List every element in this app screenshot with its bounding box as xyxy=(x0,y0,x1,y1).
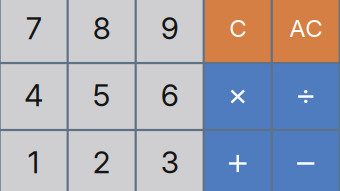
button[interactable]: Subtract xyxy=(272,130,340,191)
button[interactable]: One xyxy=(0,130,68,191)
button[interactable]: Three xyxy=(136,130,204,191)
button[interactable]: Eight xyxy=(68,0,136,63)
button[interactable]: Five xyxy=(68,63,136,130)
button[interactable]: Four xyxy=(0,63,68,130)
button[interactable]: Nine xyxy=(136,0,204,63)
staticText: 5 xyxy=(93,77,111,113)
staticText: 3 xyxy=(161,144,179,180)
staticText: 9 xyxy=(161,10,179,46)
staticText: C xyxy=(229,14,246,43)
staticText: 1 xyxy=(28,144,40,180)
button[interactable]: Six xyxy=(136,63,204,130)
button[interactable]: All clear xyxy=(272,0,340,63)
button[interactable]: Add xyxy=(204,130,272,191)
button[interactable]: Clear xyxy=(204,0,272,63)
button[interactable]: Two xyxy=(68,130,136,191)
button[interactable]: Seven xyxy=(0,0,68,63)
staticText: 2 xyxy=(93,144,111,180)
staticText: 7 xyxy=(26,10,42,46)
staticText: 8 xyxy=(93,10,111,46)
staticText: AC xyxy=(289,14,322,43)
staticText: 4 xyxy=(24,77,43,113)
button[interactable]: Divide xyxy=(272,63,340,130)
staticText: 6 xyxy=(161,77,179,113)
button[interactable]: Multiply xyxy=(204,63,272,130)
